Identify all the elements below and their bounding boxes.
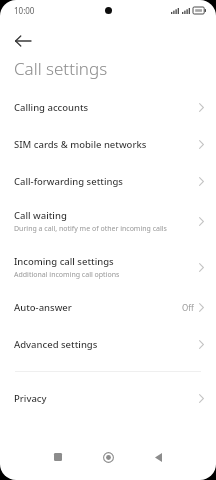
staticText: Call waiting: [14, 209, 67, 222]
button[interactable]: Back: [3, 28, 43, 54]
button[interactable]: Incoming call settings: [0, 246, 216, 289]
staticText: 10:00: [14, 5, 35, 16]
button[interactable]: SIM cards & mobile networks: [0, 129, 216, 160]
button[interactable]: Call waiting: [0, 200, 216, 243]
button[interactable]: Back: [143, 442, 173, 472]
button[interactable]: Calling accounts: [0, 92, 216, 123]
staticText: Advanced settings: [14, 338, 98, 351]
button[interactable]: Auto-answer: [0, 292, 216, 323]
staticText: Auto-answer: [14, 301, 72, 314]
button[interactable]: Home: [93, 442, 123, 472]
staticText: During a call, notify me of other incomi…: [14, 224, 167, 234]
button[interactable]: Call-forwarding settings: [0, 166, 216, 197]
staticText: Privacy: [14, 392, 47, 405]
button[interactable]: Advanced settings: [0, 329, 216, 360]
staticText: Call-forwarding settings: [14, 175, 123, 188]
staticText: SIM cards & mobile networks: [14, 138, 147, 151]
staticText: Off: [182, 302, 194, 313]
staticText: Call settings: [14, 57, 108, 80]
staticText: Calling accounts: [14, 101, 89, 114]
staticText: Incoming call settings: [14, 255, 114, 268]
button[interactable]: Recents: [43, 442, 73, 472]
button[interactable]: Privacy: [0, 383, 216, 414]
staticText: Additional incoming call options: [14, 270, 120, 280]
